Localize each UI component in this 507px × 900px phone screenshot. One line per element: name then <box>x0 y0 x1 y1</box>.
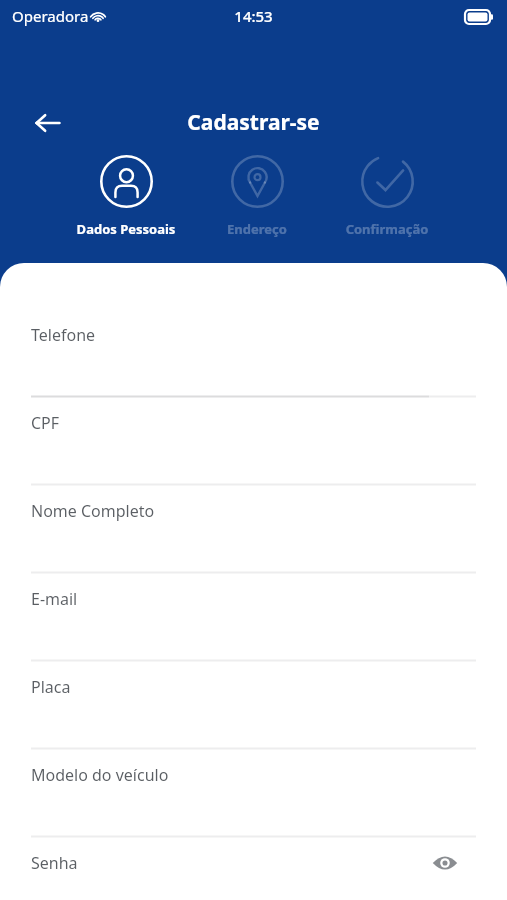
button[interactable]: Dados Pessoais <box>64 155 188 238</box>
button[interactable]: Mostrar senha <box>425 848 465 878</box>
button[interactable]: Modelo do veículo <box>0 750 507 838</box>
staticText: Dados Pessoais <box>64 220 188 238</box>
button[interactable]: E-mail <box>0 574 507 662</box>
staticText: E-mail <box>31 588 78 610</box>
button[interactable]: Voltar <box>26 101 70 145</box>
staticText: 14:53 <box>0 6 507 26</box>
staticText: Confirmação <box>325 220 449 238</box>
button[interactable]: Placa <box>0 662 507 750</box>
button[interactable]: Nome Completo <box>0 486 507 574</box>
button[interactable]: Confirmação <box>325 155 449 238</box>
staticText: Senha <box>31 852 78 874</box>
staticText: Operadora <box>12 6 89 26</box>
staticText: Endereço <box>195 220 319 238</box>
staticText: Modelo do veículo <box>31 764 169 786</box>
staticText: Placa <box>31 676 71 698</box>
staticText: Cadastrar-se <box>0 108 507 137</box>
button[interactable]: Endereço <box>195 155 319 238</box>
button[interactable]: Senha <box>0 838 507 900</box>
staticText: Nome Completo <box>31 500 155 522</box>
button[interactable]: CPF <box>0 398 507 486</box>
staticText: CPF <box>31 412 60 434</box>
button[interactable]: Telefone <box>0 310 507 398</box>
staticText: Telefone <box>31 324 96 346</box>
